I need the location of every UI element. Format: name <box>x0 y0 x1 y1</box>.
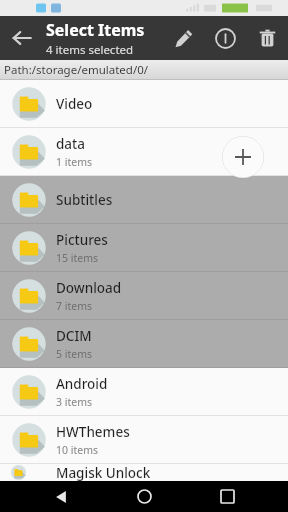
button[interactable]: Add <box>222 136 264 178</box>
button[interactable]: Edit <box>162 16 204 60</box>
staticText: DCIM <box>56 327 92 345</box>
staticText: HWThemes <box>56 423 130 441</box>
staticText: Pictures <box>56 231 108 249</box>
button[interactable]: data <box>0 128 288 176</box>
staticText: Select Items <box>46 19 145 41</box>
button[interactable]: Info <box>204 16 246 60</box>
button[interactable]: Home <box>122 481 166 512</box>
staticText: 1 items <box>56 155 93 169</box>
staticText: Download <box>56 279 122 297</box>
button[interactable]: Delete <box>246 16 288 60</box>
staticText: 4 items selected <box>46 42 134 58</box>
button[interactable]: HWThemes <box>0 416 288 464</box>
staticText: Path:/storage/emulated/0/ <box>4 62 149 78</box>
staticText: Video <box>56 95 93 113</box>
staticText: Android <box>56 375 108 393</box>
staticText: 7 items <box>56 299 93 313</box>
button[interactable]: Pictures <box>0 224 288 272</box>
button[interactable]: DCIM <box>0 320 288 368</box>
staticText: 15 items <box>56 251 99 265</box>
staticText: Magisk Unlock <box>56 464 151 481</box>
button[interactable]: Subtitles <box>0 176 288 224</box>
button[interactable]: Back <box>39 481 83 512</box>
staticText: data <box>56 135 85 153</box>
staticText: 3 items <box>56 395 93 409</box>
staticText: Subtitles <box>56 191 113 209</box>
button[interactable]: Magisk Unlock <box>0 464 288 481</box>
button[interactable]: Recents <box>205 481 249 512</box>
button[interactable]: Download <box>0 272 288 320</box>
button[interactable]: Back <box>0 16 44 60</box>
staticText: 10 items <box>56 443 99 457</box>
button[interactable]: Android <box>0 368 288 416</box>
staticText: 5 items <box>56 347 93 361</box>
button[interactable]: Video <box>0 80 288 128</box>
